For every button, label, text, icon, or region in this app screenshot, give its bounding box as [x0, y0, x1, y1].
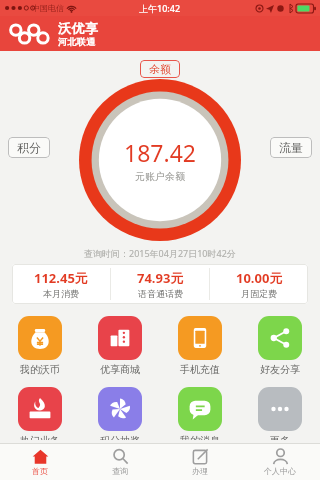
staticText: 首页 — [32, 466, 48, 476]
staticText: 积分 — [17, 140, 41, 155]
button[interactable]: 我的沃币 — [0, 313, 80, 379]
staticText: 我的沃币 — [20, 363, 60, 376]
button[interactable]: 我的消息 — [160, 384, 240, 443]
staticText: 查询 — [112, 466, 128, 476]
staticText: 余额 — [149, 62, 171, 76]
button[interactable]: 手机充值 — [160, 313, 240, 379]
button[interactable]: 更多 — [240, 384, 320, 443]
button[interactable]: 查询 — [80, 444, 160, 480]
button[interactable]: 个人中心 — [240, 444, 320, 480]
staticText: 手机充值 — [180, 363, 220, 376]
staticText: 元账户余额 — [135, 170, 185, 183]
button[interactable]: 办理 — [160, 444, 240, 480]
staticText: 语音通话费 — [138, 288, 183, 299]
button[interactable]: 74.93元 — [111, 264, 209, 304]
staticText: 74.93元 — [137, 269, 184, 287]
button[interactable]: 积分 — [8, 137, 50, 158]
staticText: 个人中心 — [264, 466, 296, 476]
button[interactable]: 187.42 — [79, 79, 241, 241]
button[interactable]: 热门业务 — [0, 384, 80, 443]
staticText: 更多 — [270, 434, 290, 440]
staticText: 上午10:42 — [139, 2, 181, 14]
staticText: 沃优享 — [58, 20, 99, 36]
staticText: 好友分享 — [260, 363, 300, 376]
staticText: 积分抽奖 — [100, 434, 140, 440]
staticText: 热门业务 — [20, 434, 60, 440]
staticText: 112.45元 — [34, 269, 88, 287]
staticText: 187.42 — [124, 137, 196, 168]
staticText: 河北联通 — [58, 36, 96, 47]
staticText: 查询时间：2015年04月27日10时42分 — [84, 247, 236, 259]
staticText: 流量 — [279, 140, 303, 155]
button[interactable]: 首页 — [0, 444, 80, 480]
staticText: 办理 — [192, 466, 208, 476]
staticText: 我的消息 — [180, 434, 220, 440]
staticText: 中国电信 — [32, 3, 64, 13]
button[interactable]: 112.45元 — [12, 264, 110, 304]
button[interactable]: 10.00元 — [210, 264, 308, 304]
button[interactable]: 积分抽奖 — [80, 384, 160, 443]
button[interactable]: 好友分享 — [240, 313, 320, 379]
button[interactable]: 流量 — [270, 137, 312, 158]
staticText: 本月消费 — [43, 288, 79, 299]
staticText: 优享商城 — [100, 363, 140, 376]
staticText: 10.00元 — [236, 269, 283, 287]
button[interactable]: 余额 — [140, 60, 180, 78]
button[interactable]: 优享商城 — [80, 313, 160, 379]
staticText: 月固定费 — [241, 288, 277, 299]
